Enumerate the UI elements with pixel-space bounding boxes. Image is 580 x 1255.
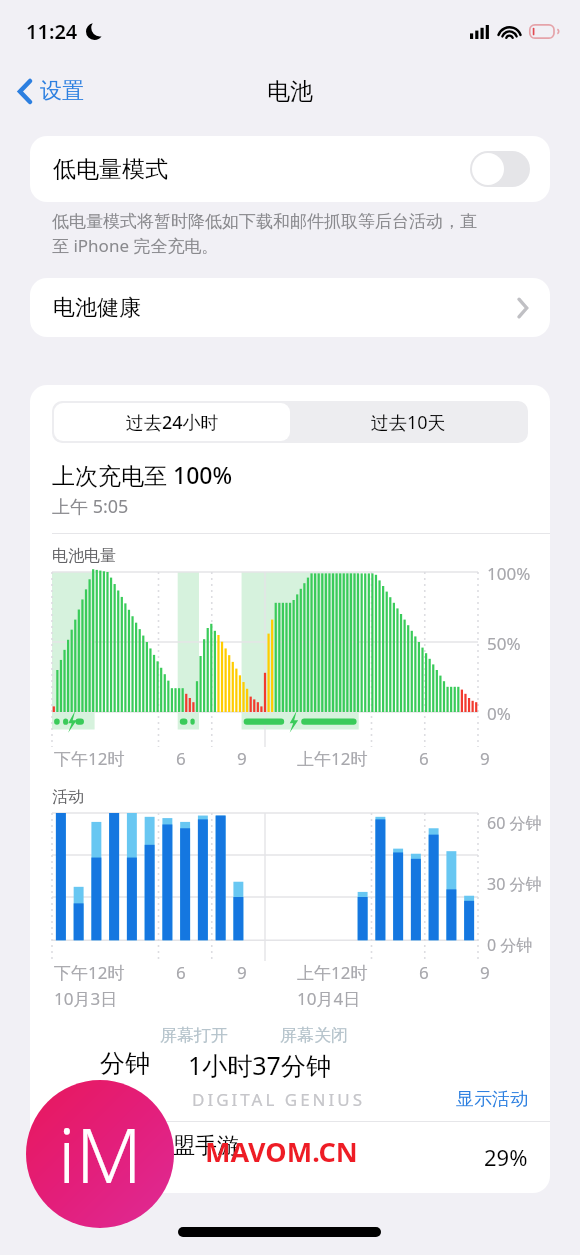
staticText: 30 分钟 <box>487 873 542 895</box>
staticText: 文娱 <box>107 1160 141 1181</box>
button[interactable]: 过去24小时 <box>54 403 290 441</box>
staticText: 9 <box>480 747 490 770</box>
staticText: 分钟 <box>100 1048 150 1079</box>
other: 电池健康 <box>517 298 528 318</box>
staticText: 下午12时 <box>54 961 125 984</box>
staticText: 6 <box>176 961 186 984</box>
staticText: MAVOM.CN <box>205 1133 358 1170</box>
button[interactable]: 显示活动 <box>456 1088 528 1111</box>
staticText: 上次充电至 100% <box>52 459 233 490</box>
staticText: 1小时37分钟 <box>188 1048 331 1082</box>
button[interactable]: 电池健康 <box>30 278 550 337</box>
staticText: 电池电量 <box>52 546 116 566</box>
staticText: DIGITAL GENIUS <box>192 1088 366 1111</box>
staticText: 低电量模式 <box>53 155 168 184</box>
staticText: 过去10天 <box>371 410 446 435</box>
button[interactable]: 过去10天 <box>290 403 526 441</box>
button[interactable]: 低电量模式 <box>30 136 550 202</box>
staticText: iM <box>58 1102 142 1206</box>
staticText: 电池健康 <box>53 294 141 322</box>
staticText: 50% <box>487 632 521 655</box>
staticText: 过去24小时 <box>126 410 219 435</box>
staticText: 上午12时 <box>297 961 368 984</box>
staticText: 显示活动 <box>456 1088 528 1111</box>
staticText: 100% <box>487 562 531 585</box>
staticText: 10月4日 <box>297 987 361 1010</box>
staticText: 低电量模式将暂时降低如下载和邮件抓取等后台活动，直 至 iPhone 完全充电。 <box>52 211 477 257</box>
staticText: 29% <box>484 1142 528 1172</box>
staticText: 屏幕打开 <box>160 1025 228 1046</box>
staticText: 9 <box>237 747 247 770</box>
staticText: 下午12时 <box>54 747 125 770</box>
staticText: 0% <box>487 702 511 725</box>
staticText: 6 <box>419 961 429 984</box>
staticText: 活动 <box>52 787 84 807</box>
staticText: 10月3日 <box>54 987 118 1010</box>
staticText: 6 <box>419 747 429 770</box>
button[interactable]: 设置 <box>12 69 90 113</box>
staticText: 上午12时 <box>297 747 368 770</box>
staticText: 11:24 <box>26 18 78 45</box>
staticText: 9 <box>237 961 247 984</box>
staticText: 9 <box>480 961 490 984</box>
staticText: 60 分钟 <box>487 812 542 834</box>
button[interactable]: 英雄联盟手游 <box>30 1132 550 1181</box>
staticText: 英雄联盟手游 <box>107 1132 239 1160</box>
staticText: 设置 <box>40 77 84 105</box>
staticText: 电池 <box>267 77 313 106</box>
staticText: 屏幕关闭 <box>280 1025 348 1046</box>
staticText: 0 分钟 <box>487 934 533 956</box>
staticText: 6 <box>176 747 186 770</box>
staticText: 上午 5:05 <box>52 494 129 519</box>
